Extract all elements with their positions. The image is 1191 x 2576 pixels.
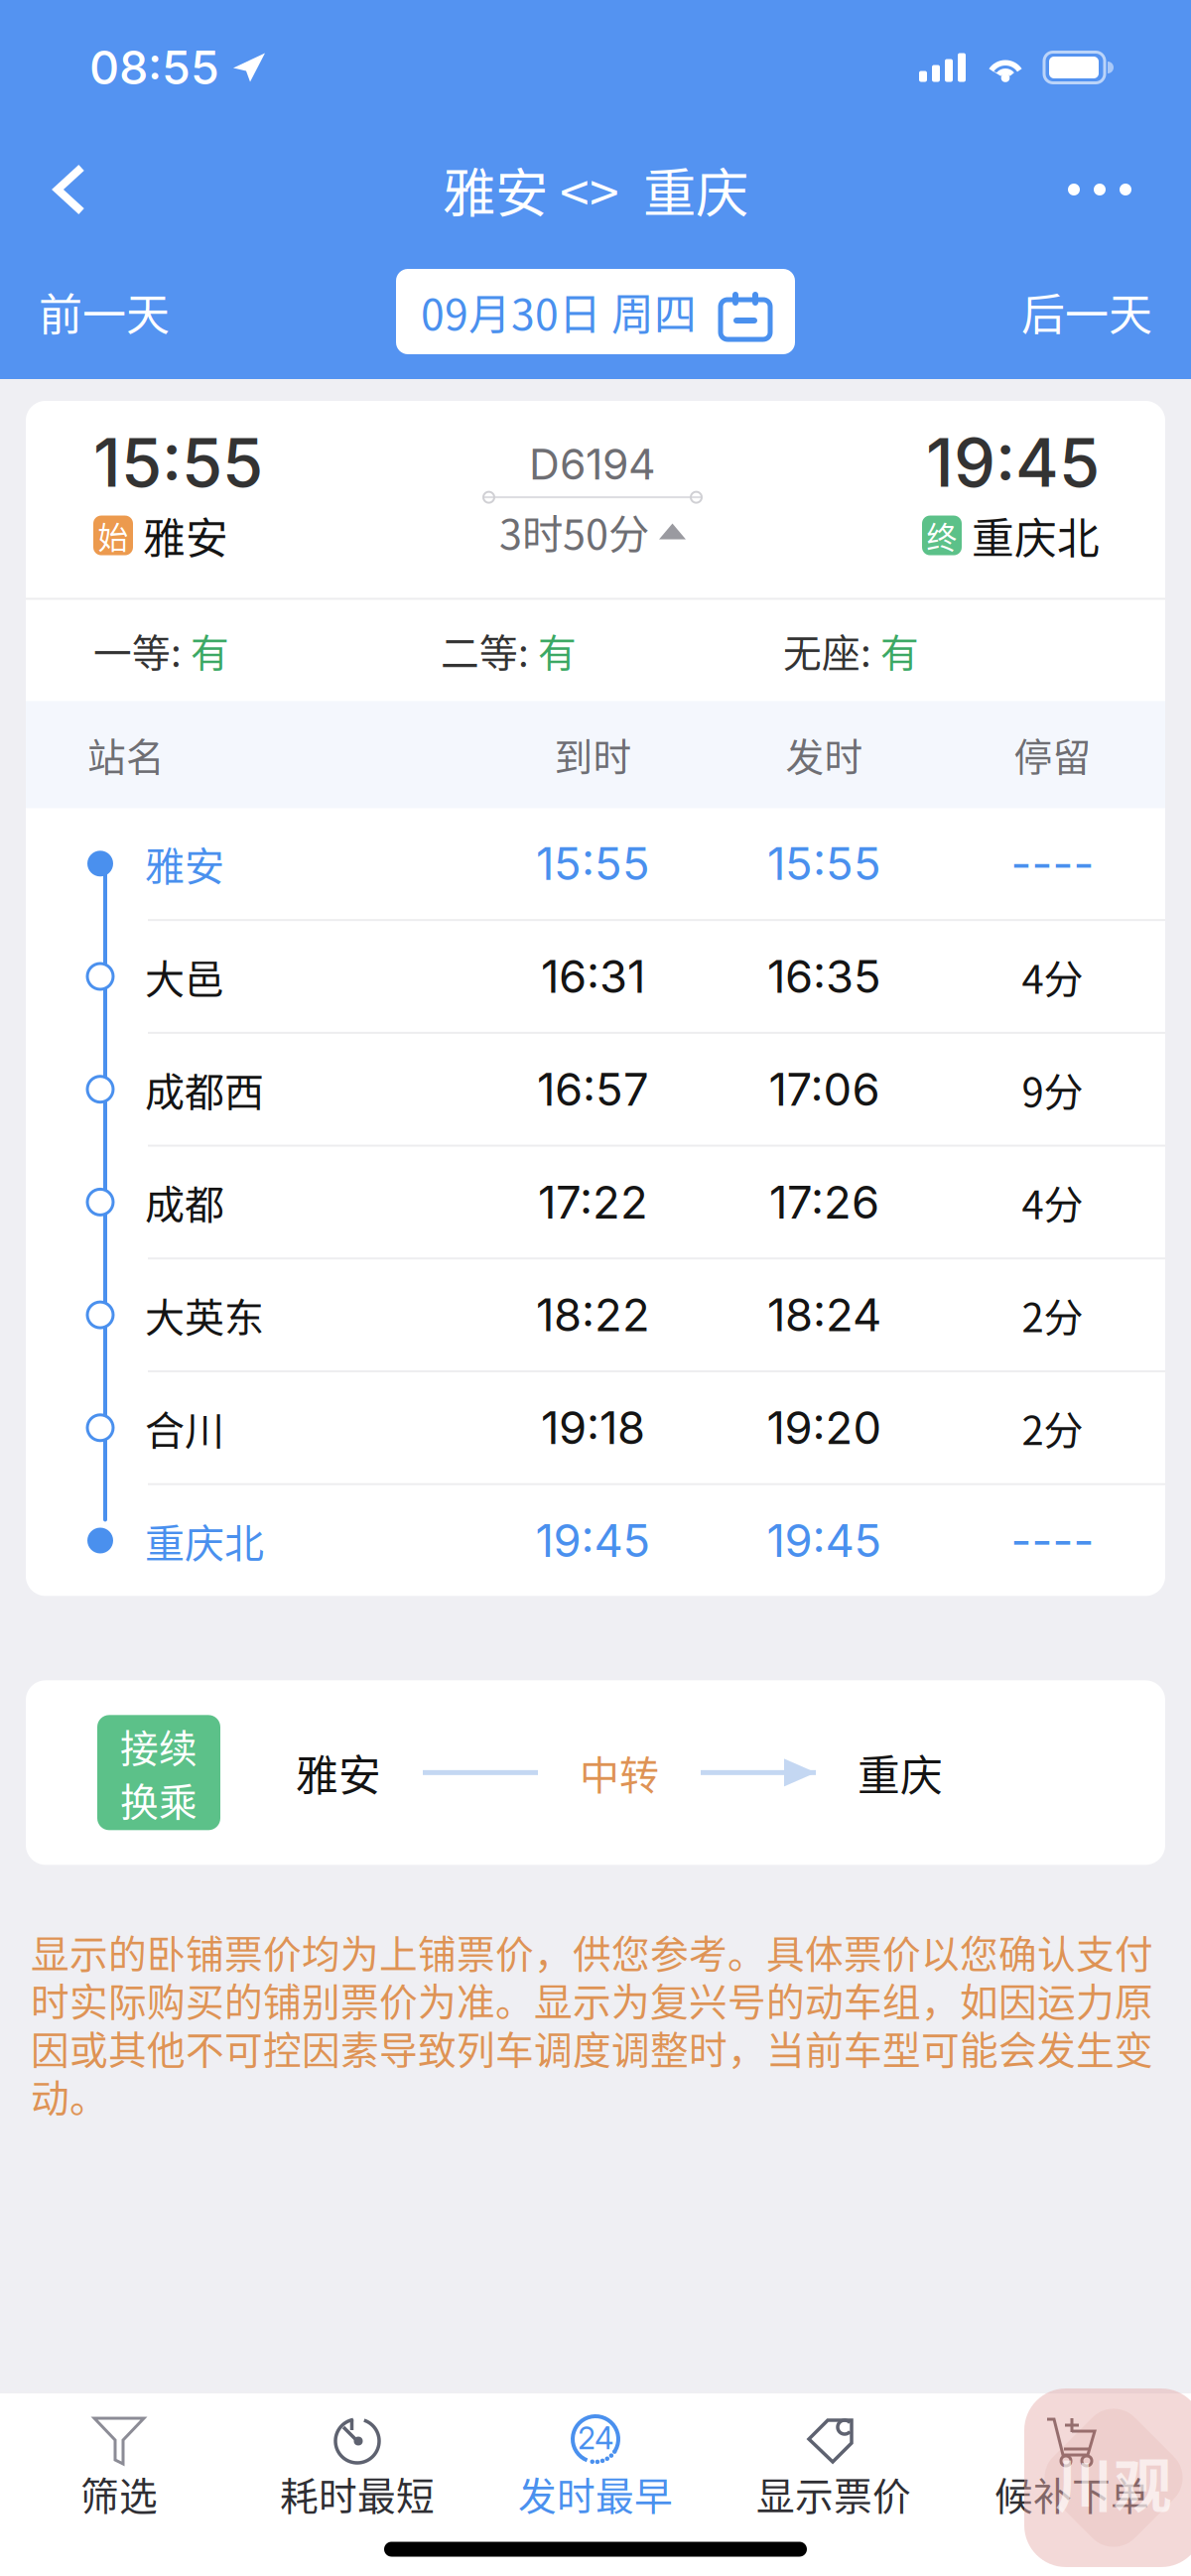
staticText: 站名 <box>87 727 165 782</box>
staticText: 16:31 <box>541 949 645 1004</box>
staticText: 16:57 <box>537 1062 649 1117</box>
staticText: 重庆北 <box>145 1512 264 1569</box>
button[interactable]: 候补下单 <box>953 2393 1191 2522</box>
button[interactable]: 耗时最短 <box>238 2393 476 2522</box>
staticText: 18:22 <box>536 1288 650 1342</box>
staticText: 终 <box>926 513 957 557</box>
staticText: 3时50分 <box>499 502 649 561</box>
staticText: 17:26 <box>769 1175 879 1229</box>
staticText: 显示票价 <box>756 2466 911 2521</box>
staticText: 15:55 <box>767 836 881 891</box>
button[interactable]: 接续 <box>26 1680 1165 1865</box>
staticText: 发时最早 <box>518 2466 673 2521</box>
staticText: 19:20 <box>767 1401 882 1455</box>
button[interactable]: 后一天 <box>954 267 1191 356</box>
staticText: 前一天 <box>39 280 170 343</box>
staticText: 08:55 <box>89 39 219 96</box>
staticText: 2分 <box>1022 1286 1083 1344</box>
button[interactable]: 前一天 <box>0 267 237 356</box>
staticText: 15:55 <box>536 836 650 891</box>
staticText: 雅安 <box>145 835 224 892</box>
button[interactable]: 显示票价 <box>715 2393 953 2522</box>
staticText: D6194 <box>529 439 656 490</box>
staticText: 9分 <box>1022 1060 1083 1118</box>
staticText: 24 <box>578 2420 613 2457</box>
staticText: 15:55 <box>93 423 263 503</box>
staticText: 19:45 <box>767 1513 882 1568</box>
staticText: 重庆 <box>858 1742 943 1803</box>
button[interactable]: Back <box>0 135 139 244</box>
staticText: 16:35 <box>767 949 881 1004</box>
staticText: 2分 <box>1022 1399 1083 1456</box>
staticText: 大邑 <box>145 948 224 1005</box>
button[interactable]: 09月30日 周四 <box>396 269 795 354</box>
staticText: 成都 <box>145 1173 224 1231</box>
staticText: ---- <box>1011 836 1094 891</box>
staticText: 重庆北 <box>972 505 1100 566</box>
staticText: 19:45 <box>535 1513 651 1568</box>
staticText: 有 <box>191 623 229 678</box>
staticText: 4分 <box>1022 948 1083 1005</box>
staticText: 接续 <box>120 1718 198 1774</box>
staticText: 发时 <box>786 727 863 782</box>
staticText: 合川 <box>145 1399 224 1456</box>
staticText: 19:45 <box>926 423 1100 503</box>
staticText: 17:06 <box>769 1062 880 1117</box>
staticText: 后一天 <box>1021 280 1152 343</box>
button[interactable]: 筛选 <box>0 2393 238 2522</box>
staticText: 中转 <box>580 1744 659 1801</box>
staticText: 大英东 <box>145 1286 264 1344</box>
staticText: 19:18 <box>541 1401 645 1455</box>
staticText: 17:22 <box>538 1175 648 1229</box>
staticText: 筛选 <box>80 2466 158 2521</box>
staticText: 雅安 <box>143 505 228 566</box>
staticText: ---- <box>1011 1513 1094 1568</box>
staticText: 无座: <box>783 623 880 678</box>
staticText: 雅安 <box>296 1742 381 1803</box>
staticText: 4分 <box>1022 1173 1083 1231</box>
button[interactable]: 24 <box>476 2393 715 2522</box>
staticText: 二等: <box>441 623 538 678</box>
staticText: 雅安 <> 重庆 <box>443 151 748 228</box>
staticText: 川观 <box>1055 2440 1172 2524</box>
staticText: 有 <box>538 623 577 678</box>
staticText: 一等: <box>93 623 191 678</box>
button[interactable]: More <box>1008 135 1191 244</box>
staticText: 有 <box>880 623 919 678</box>
staticText: 始 <box>98 513 129 557</box>
staticText: 显示的卧铺票价均为上铺票价，供您参考。具体票价以您确认支付时实际购买的铺别票价为… <box>31 1927 1153 2120</box>
staticText: 18:24 <box>767 1288 881 1342</box>
staticText: 09月30日 周四 <box>421 281 697 342</box>
staticText: 成都西 <box>145 1060 264 1118</box>
staticText: 换乘 <box>120 1772 198 1827</box>
staticText: 候补下单 <box>994 2466 1149 2521</box>
staticText: 停留 <box>1014 727 1091 782</box>
staticText: 到时 <box>554 727 632 782</box>
staticText: 耗时最短 <box>280 2466 435 2521</box>
